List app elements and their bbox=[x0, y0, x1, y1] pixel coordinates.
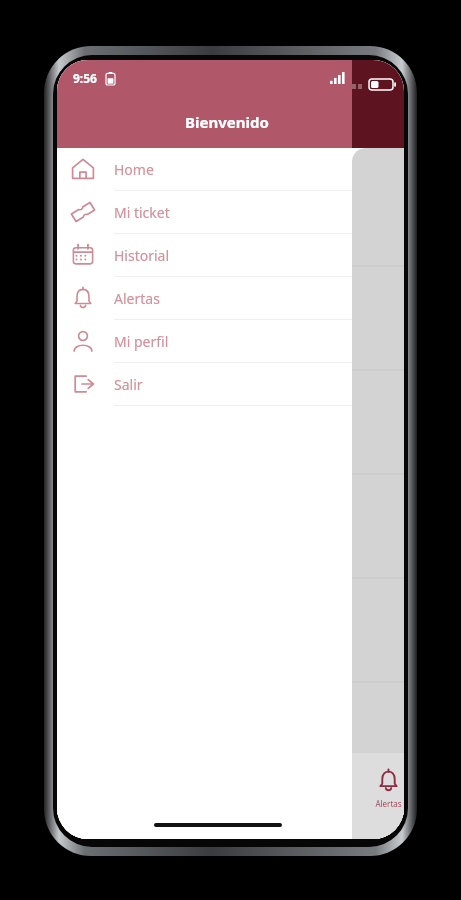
button[interactable]: Mi ticket bbox=[57, 191, 352, 234]
button[interactable]: Historial bbox=[57, 234, 352, 277]
staticText: Mi ticket bbox=[114, 203, 170, 222]
button[interactable]: Mi perfil bbox=[57, 320, 352, 363]
staticText: Home bbox=[114, 160, 154, 179]
staticText: Alertas bbox=[114, 289, 160, 308]
staticText: Mi perfil bbox=[114, 332, 169, 351]
button[interactable]: Home bbox=[57, 148, 352, 191]
staticText: Salir bbox=[114, 375, 143, 394]
staticText: Historial bbox=[114, 246, 170, 265]
staticText: 9:56 bbox=[73, 70, 97, 86]
button[interactable]: Alertas bbox=[360, 767, 404, 809]
button[interactable]: Alertas bbox=[57, 277, 352, 320]
staticText: Bienvenido bbox=[185, 112, 269, 132]
staticText: Alertas bbox=[375, 798, 402, 809]
button[interactable]: Salir bbox=[57, 363, 352, 406]
